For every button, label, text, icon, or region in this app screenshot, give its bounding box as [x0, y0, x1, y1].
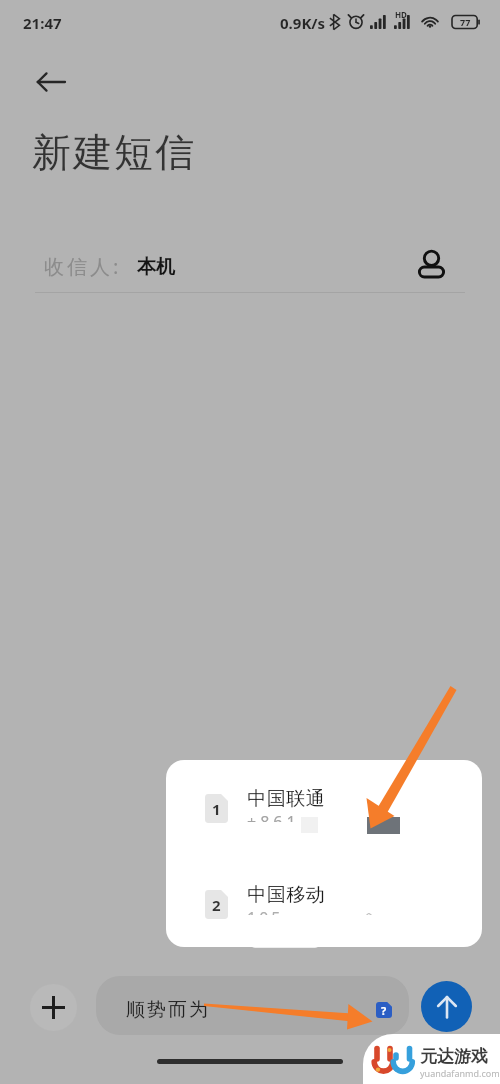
staticText: +861 [247, 811, 300, 822]
button[interactable]: 1 [166, 787, 482, 855]
staticText: HD [395, 9, 407, 20]
staticText: 0.9K/s [280, 13, 326, 33]
staticText: へ [364, 907, 379, 915]
staticText: 元达游戏 [420, 1046, 488, 1067]
staticText: 77 [460, 16, 471, 28]
button[interactable]: Back [27, 58, 75, 106]
staticText: 105 [247, 907, 284, 915]
button[interactable]: 2 [166, 883, 482, 947]
staticText: 本机 [137, 255, 175, 279]
staticText: 收信人: [44, 253, 122, 280]
staticText: 中国移动 [247, 883, 325, 907]
staticText: 1 [212, 799, 221, 819]
button[interactable]: Send [421, 981, 472, 1032]
button[interactable]: Add attachment [30, 984, 77, 1031]
staticText: ? [381, 1003, 387, 1018]
button[interactable]: SIM card [376, 1002, 392, 1018]
button[interactable]: Choose contact [409, 242, 453, 286]
staticText: yuandafanmd.com [420, 1067, 500, 1079]
staticText: 中国联通 [247, 787, 325, 811]
staticText: 21:47 [23, 13, 62, 33]
staticText: 2 [212, 895, 221, 915]
staticText: 顺势而为 [125, 998, 209, 1022]
button[interactable]: 顺势而为 [96, 976, 409, 1035]
staticText: 新建短信 [31, 128, 195, 177]
